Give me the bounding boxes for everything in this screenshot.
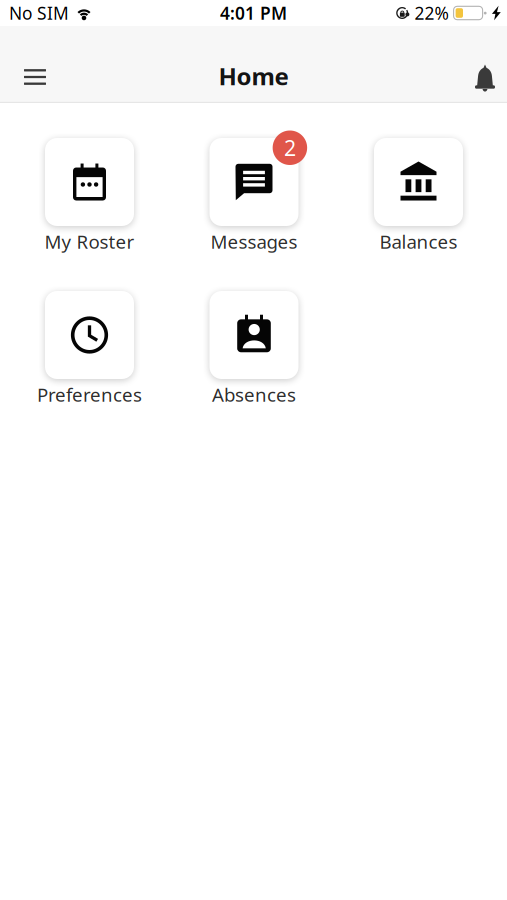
staticText: Balances <box>379 229 457 254</box>
staticText: No SIM <box>9 1 69 24</box>
button[interactable]: Notifications <box>462 62 507 92</box>
button[interactable]: 2 <box>209 130 307 254</box>
staticText: Absences <box>212 382 296 407</box>
staticText: 22% <box>415 1 449 24</box>
staticText: Messages <box>210 229 297 254</box>
button[interactable]: Absences <box>209 283 307 407</box>
staticText: Preferences <box>37 382 142 407</box>
button[interactable]: Menu <box>12 62 58 92</box>
staticText: 4:01 PM <box>220 1 287 24</box>
staticText: My Roster <box>44 229 134 254</box>
staticText: 2 <box>284 134 296 162</box>
button[interactable]: My Roster <box>45 130 143 254</box>
staticText: Home <box>218 60 288 92</box>
button[interactable]: Balances <box>374 130 472 254</box>
button[interactable]: Preferences <box>45 283 143 407</box>
